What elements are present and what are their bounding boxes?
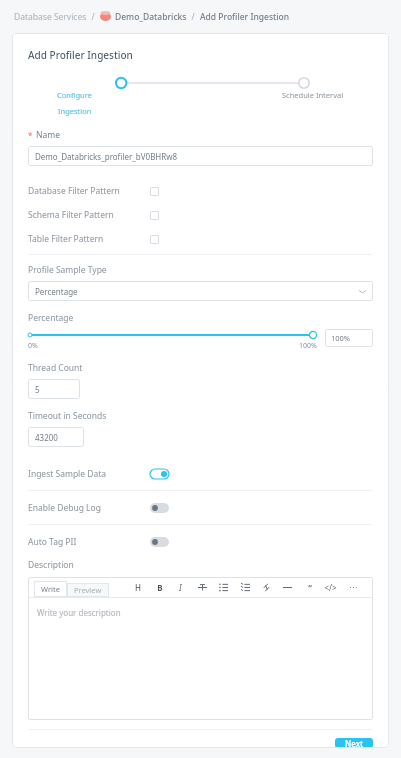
button[interactable]: Preview [67, 583, 109, 597]
staticText: / [187, 11, 200, 23]
button[interactable]: Cancel [288, 738, 329, 748]
button[interactable]: More [346, 581, 359, 594]
staticText: I [179, 582, 182, 593]
staticText: Schedule Interval [282, 90, 344, 100]
button[interactable]: Database Filter Pattern [28, 179, 373, 203]
button[interactable]: Numbered list [239, 581, 252, 594]
staticText: Add Profiler Ingestion [200, 11, 290, 23]
button[interactable]: Demo_Databricks_profiler_bV0BHRw8 [28, 146, 373, 166]
button[interactable]: 5 [28, 379, 80, 399]
staticText: Table Filter Pattern [28, 233, 150, 245]
staticText: Profile Sample Type [28, 264, 107, 276]
staticText: Name [36, 129, 60, 141]
staticText: Write [41, 584, 60, 594]
staticText: Configure [57, 90, 92, 100]
button[interactable]: Bold [153, 581, 166, 594]
button[interactable]: Auto Tag PII [28, 525, 373, 558]
staticText: Preview [74, 585, 102, 595]
staticText: Timeout in Seconds [28, 410, 107, 422]
button[interactable]: Link [260, 581, 273, 594]
staticText: * [28, 130, 33, 141]
staticText: Percentage [35, 286, 359, 297]
button[interactable]: Database Services [14, 11, 87, 23]
staticText: Ingest Sample Data [28, 468, 150, 480]
staticText: Thread Count [28, 362, 83, 374]
staticText: 43200 [35, 432, 58, 443]
button[interactable]: Horizontal rule [281, 581, 294, 594]
button[interactable]: Quote [303, 581, 316, 594]
staticText: “ [308, 582, 312, 593]
staticText: </> [324, 582, 337, 593]
button[interactable]: Percentage [28, 281, 373, 301]
staticText: Description [28, 559, 74, 571]
staticText: Schema Filter Pattern [28, 209, 150, 221]
button[interactable]: Ingest Sample Data [28, 457, 373, 490]
staticText: Demo_Databricks_profiler_bV0BHRw8 [35, 151, 178, 162]
button[interactable]: Heading [131, 581, 144, 594]
staticText: Database Filter Pattern [28, 185, 150, 197]
button[interactable]: Schema Filter Pattern [28, 203, 373, 227]
staticText: Percentage [28, 312, 74, 324]
staticText: Ingestion [58, 106, 92, 116]
button[interactable]: 43200 [28, 427, 84, 447]
button[interactable]: Strikethrough [196, 581, 209, 594]
button[interactable]: Next [335, 738, 373, 748]
button[interactable]: Demo_Databricks [115, 11, 187, 23]
button[interactable]: 100% [325, 329, 373, 347]
staticText: H [135, 582, 141, 593]
button[interactable]: Code [324, 581, 337, 594]
staticText: Write your description [37, 607, 121, 618]
staticText: Next [345, 738, 364, 748]
button[interactable]: Enable Debug Log [28, 491, 373, 524]
staticText: Auto Tag PII [28, 536, 150, 548]
staticText: 100% [331, 333, 351, 343]
staticText: / [87, 11, 100, 23]
staticText: B [157, 582, 163, 593]
button[interactable]: Write [34, 581, 67, 597]
staticText: Enable Debug Log [28, 502, 150, 514]
button[interactable]: Italic [174, 581, 187, 594]
staticText: 5 [35, 384, 40, 395]
button[interactable]: Bulleted list [217, 581, 230, 594]
staticText: 100% [299, 341, 317, 351]
staticText: Add Profiler Ingestion [28, 48, 133, 62]
button[interactable]: Table Filter Pattern [28, 227, 373, 251]
staticText: ⋯ [349, 583, 357, 592]
staticText: 0% [28, 341, 38, 351]
